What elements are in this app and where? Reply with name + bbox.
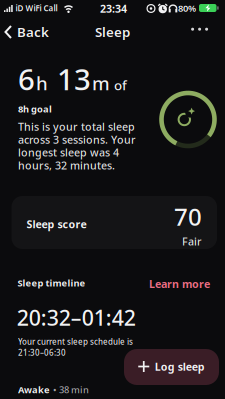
staticText: Sleep timeline bbox=[17, 277, 85, 289]
staticText: 21:30–06:30 bbox=[18, 347, 66, 358]
staticText: 80% bbox=[178, 2, 196, 14]
button[interactable]: Learn more bbox=[149, 277, 210, 291]
staticText: Log sleep bbox=[155, 359, 205, 374]
staticText: 20:32–01:42 bbox=[17, 303, 136, 331]
staticText: of bbox=[111, 76, 127, 94]
staticText: Your current sleep schedule is bbox=[18, 336, 133, 347]
staticText: 8h goal bbox=[18, 103, 52, 115]
staticText: 70 bbox=[174, 200, 202, 232]
staticText: iD WiFi Call bbox=[15, 3, 57, 13]
staticText: 13 bbox=[49, 59, 91, 98]
staticText: Awake bbox=[18, 383, 50, 396]
button[interactable]: More options bbox=[185, 20, 215, 38]
staticText: This is your total sleep bbox=[18, 120, 135, 134]
staticText: Sleep score bbox=[26, 217, 86, 231]
button[interactable]: Back bbox=[0, 21, 54, 43]
staticText: h bbox=[36, 71, 48, 95]
staticText: Back bbox=[17, 23, 49, 41]
staticText: 23:34 bbox=[100, 1, 127, 16]
staticText: Learn more bbox=[149, 277, 210, 291]
button[interactable]: Sleep score bbox=[11, 196, 217, 249]
staticText: hours, 32 minutes. bbox=[18, 158, 115, 172]
staticText: m bbox=[92, 71, 110, 95]
staticText: • 38 min bbox=[53, 383, 89, 396]
button[interactable]: Log sleep bbox=[124, 349, 219, 385]
staticText: 6 bbox=[18, 59, 35, 98]
staticText: Sleep bbox=[95, 23, 130, 41]
staticText: across 3 sessions. Your bbox=[18, 132, 136, 147]
staticText: longest sleep was 4 bbox=[18, 145, 119, 159]
staticText: Fair bbox=[182, 234, 202, 249]
